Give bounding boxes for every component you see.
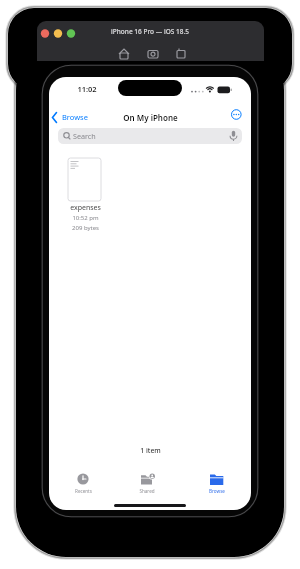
staticText: Search <box>73 131 96 141</box>
staticText: Recents <box>75 488 92 494</box>
button[interactable]: Recents <box>63 468 103 496</box>
staticText: 11:02 <box>77 84 97 94</box>
staticText: 10:52 pm <box>72 214 99 222</box>
staticText: 209 bytes <box>72 224 99 232</box>
button[interactable]: Browse <box>196 468 237 496</box>
staticText: expenses <box>70 203 101 213</box>
button[interactable] <box>62 155 108 235</box>
staticText: Shared <box>139 488 155 494</box>
staticText: Browse <box>209 488 225 494</box>
button[interactable]: Search <box>58 128 242 144</box>
button[interactable] <box>110 44 190 64</box>
staticText: On My iPhone <box>123 112 178 123</box>
button[interactable] <box>230 108 243 121</box>
staticText: Browse <box>62 112 88 122</box>
staticText: iPhone 16 Pro — iOS 18.5 <box>111 27 189 36</box>
button[interactable]: Browse <box>49 109 109 125</box>
staticText: 1 item <box>140 446 161 455</box>
button[interactable]: Shared <box>127 468 167 496</box>
